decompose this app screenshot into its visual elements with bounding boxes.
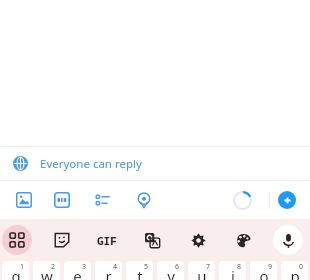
button[interactable]: GIF <box>92 225 122 255</box>
staticText: 1 <box>20 262 25 272</box>
staticText: u <box>197 266 207 280</box>
staticText: 2 <box>51 262 56 272</box>
staticText: GIF <box>97 233 117 248</box>
staticText: Everyone can reply <box>40 156 142 172</box>
staticText: q <box>11 266 21 280</box>
staticText: y <box>167 266 175 280</box>
staticText: t <box>137 266 143 280</box>
staticText: 5 <box>144 262 149 272</box>
button[interactable]: t <box>126 261 153 280</box>
staticText: 8 <box>237 262 242 272</box>
button[interactable]: Add poll <box>89 186 117 214</box>
staticText: o <box>259 266 269 280</box>
staticText: w <box>41 266 53 280</box>
button[interactable]: q <box>2 261 29 280</box>
button[interactable]: Add location <box>130 186 158 214</box>
button[interactable]: Themes <box>228 225 258 255</box>
staticText: 4 <box>113 262 118 272</box>
button[interactable]: Add photo <box>10 186 38 214</box>
button[interactable]: Add GIF <box>48 186 76 214</box>
button[interactable]: Translate <box>137 225 167 255</box>
button[interactable]: Everyone can reply <box>0 147 310 180</box>
button[interactable]: e <box>64 261 91 280</box>
button[interactable]: u <box>188 261 215 280</box>
staticText: r <box>105 266 112 280</box>
button[interactable]: Stickers <box>47 225 77 255</box>
button[interactable]: y <box>157 261 184 280</box>
button[interactable]: Settings <box>183 225 213 255</box>
staticText: 9 <box>268 262 273 272</box>
button[interactable]: p <box>281 261 308 280</box>
button[interactable]: r <box>95 261 122 280</box>
button[interactable]: Character count <box>229 187 255 213</box>
staticText: 6 <box>175 262 180 272</box>
staticText: 0 <box>299 262 304 272</box>
staticText: e <box>73 266 82 280</box>
button[interactable]: Add another Tweet <box>274 187 300 213</box>
staticText: i <box>231 266 235 280</box>
button[interactable]: Open features menu <box>2 225 32 255</box>
button[interactable]: Voice input <box>273 225 303 255</box>
button[interactable]: i <box>219 261 246 280</box>
staticText: 3 <box>82 262 87 272</box>
button[interactable]: w <box>33 261 60 280</box>
button[interactable]: o <box>250 261 277 280</box>
staticText: 7 <box>206 262 211 272</box>
staticText: p <box>290 266 300 280</box>
